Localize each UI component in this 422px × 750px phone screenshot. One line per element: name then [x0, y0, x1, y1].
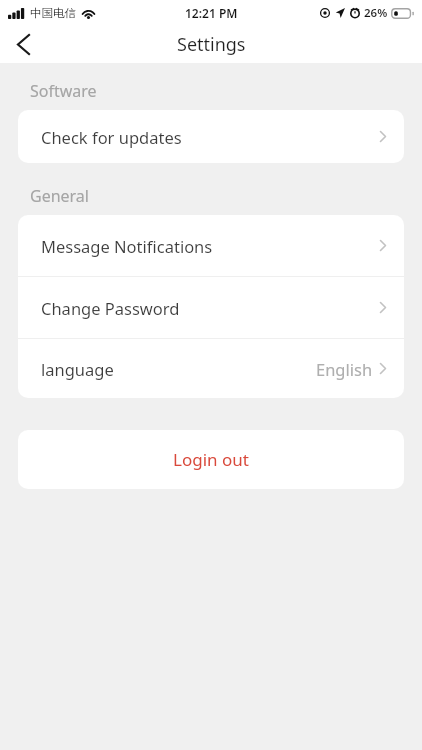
staticText: Software	[30, 80, 97, 102]
staticText: Change Password	[41, 297, 180, 319]
staticText: Check for updates	[41, 126, 182, 148]
staticText: 26%	[364, 5, 388, 21]
staticText: Settings	[177, 32, 246, 57]
staticText: 中国电信	[30, 6, 76, 20]
staticText: English	[316, 358, 373, 380]
staticText: Message Notifications	[41, 235, 213, 257]
button[interactable]: Message Notifications	[18, 215, 404, 276]
staticText: Login out	[173, 448, 249, 471]
button[interactable]: Change Password	[18, 277, 404, 338]
button[interactable]: Back	[0, 26, 46, 63]
staticText: 12:21 PM	[185, 5, 238, 21]
staticText: language	[41, 358, 114, 380]
button[interactable]: language	[18, 339, 404, 398]
staticText: General	[30, 185, 89, 207]
button[interactable]: Login out	[18, 430, 404, 489]
button[interactable]: Check for updates	[18, 110, 404, 163]
